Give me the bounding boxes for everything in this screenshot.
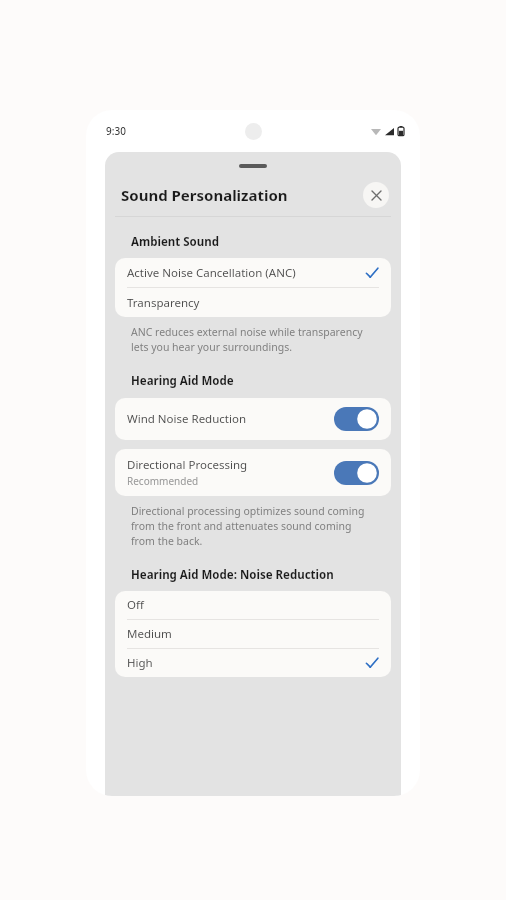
staticText: Directional Processing bbox=[127, 457, 248, 473]
button[interactable]: Off bbox=[115, 591, 391, 619]
button[interactable]: Transparency bbox=[115, 288, 391, 317]
staticText: Transparency bbox=[127, 295, 379, 311]
staticText: Active Noise Cancellation (ANC) bbox=[127, 265, 365, 281]
staticText: ANC reduces external noise while transpa… bbox=[131, 325, 369, 354]
staticText: Sound Personalization bbox=[121, 185, 363, 205]
staticText: Medium bbox=[127, 626, 379, 642]
staticText: High bbox=[127, 655, 365, 671]
button[interactable]: Directional Processing bbox=[115, 449, 391, 496]
button[interactable]: Close bbox=[363, 182, 389, 208]
button[interactable]: Active Noise Cancellation (ANC) bbox=[115, 258, 391, 287]
button[interactable]: Wind Noise Reduction bbox=[115, 398, 391, 440]
staticText: 9:30 bbox=[106, 124, 126, 138]
button[interactable]: Medium bbox=[115, 620, 391, 648]
staticText: Off bbox=[127, 597, 379, 613]
staticText: Ambient Sound bbox=[131, 234, 219, 250]
staticText: Hearing Aid Mode: Noise Reduction bbox=[131, 567, 334, 583]
button[interactable]: High bbox=[115, 649, 391, 677]
staticText: Recommended bbox=[127, 474, 199, 488]
staticText: Directional processing optimizes sound c… bbox=[131, 504, 369, 548]
staticText: Hearing Aid Mode bbox=[131, 373, 234, 389]
staticText: Wind Noise Reduction bbox=[127, 411, 247, 427]
